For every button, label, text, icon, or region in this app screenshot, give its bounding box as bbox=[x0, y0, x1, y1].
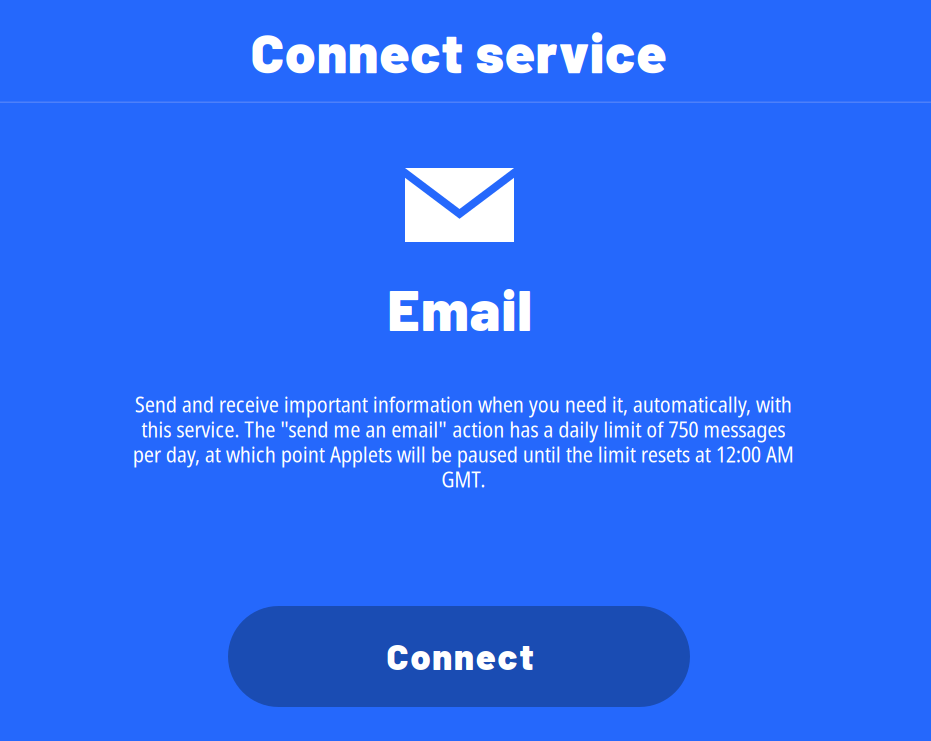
staticText: Send and receive important information w… bbox=[132, 389, 793, 494]
staticText: Email bbox=[387, 275, 532, 342]
staticText: Connect service bbox=[251, 19, 666, 84]
button[interactable]: Connect bbox=[228, 606, 690, 707]
staticText: Connect bbox=[387, 634, 533, 677]
